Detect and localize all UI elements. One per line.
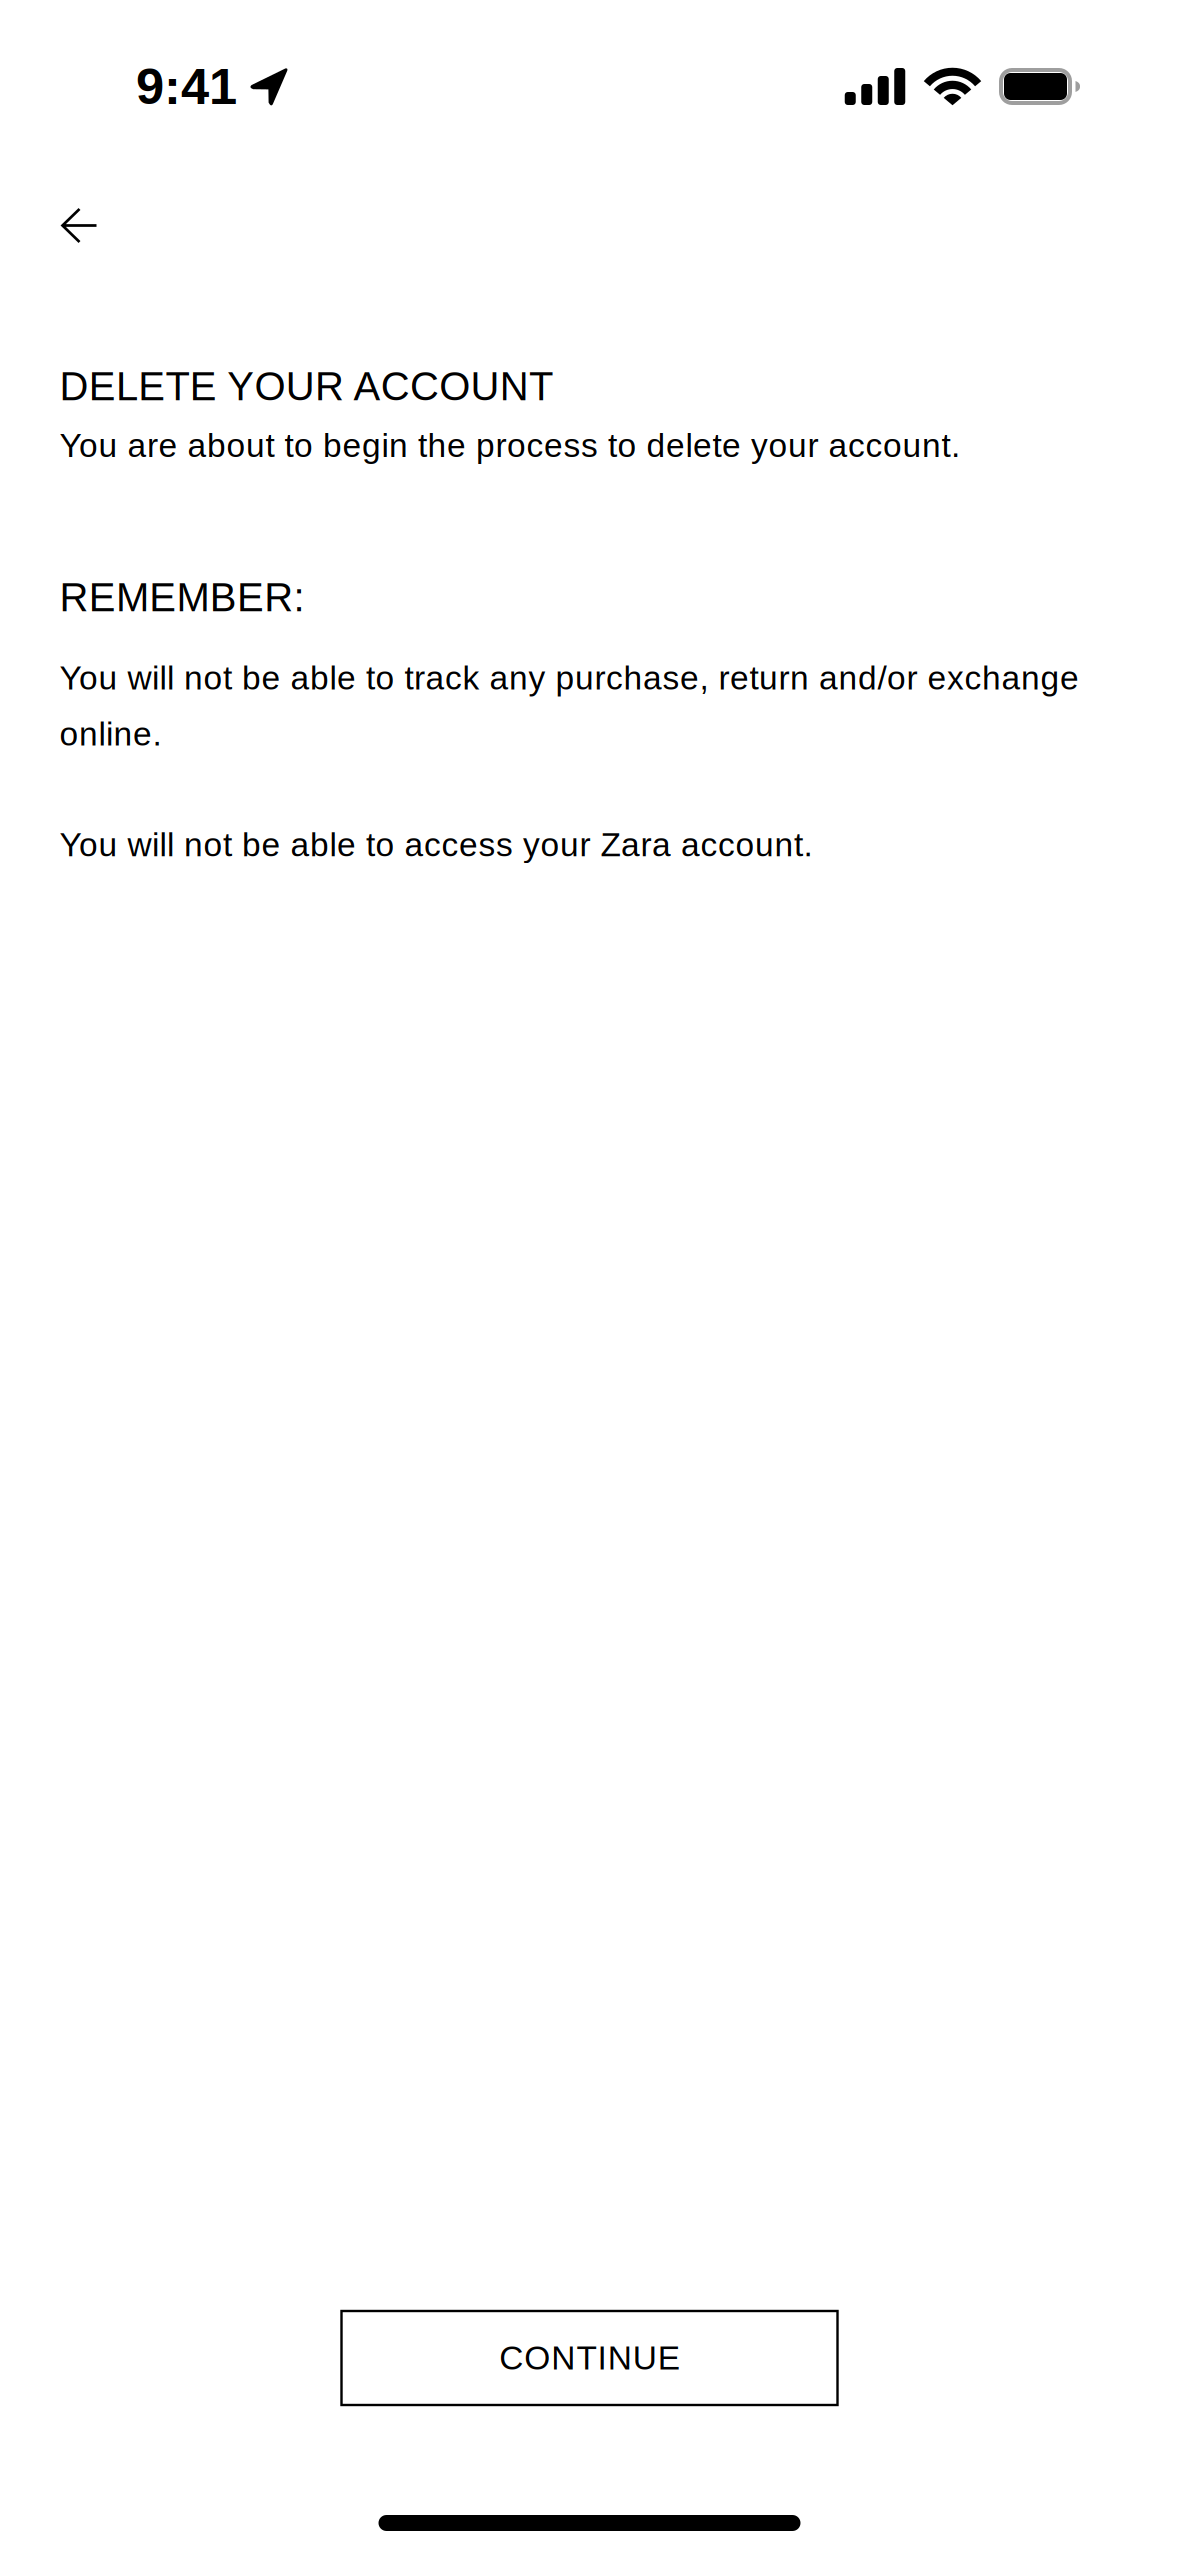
staticText: 9:41 (136, 58, 237, 115)
staticText: You will not be able to track any purcha… (59, 659, 1079, 753)
staticText: You will not be able to access your Zara… (59, 826, 812, 863)
staticText: CONTINUE (499, 2339, 680, 2377)
staticText: You are about to begin the process to de… (59, 427, 960, 464)
staticText: REMEMBER: (59, 575, 304, 620)
staticText: DELETE YOUR ACCOUNT (59, 364, 553, 409)
button[interactable]: CONTINUE (341, 2311, 837, 2405)
button[interactable]: Back (0, 186, 132, 265)
